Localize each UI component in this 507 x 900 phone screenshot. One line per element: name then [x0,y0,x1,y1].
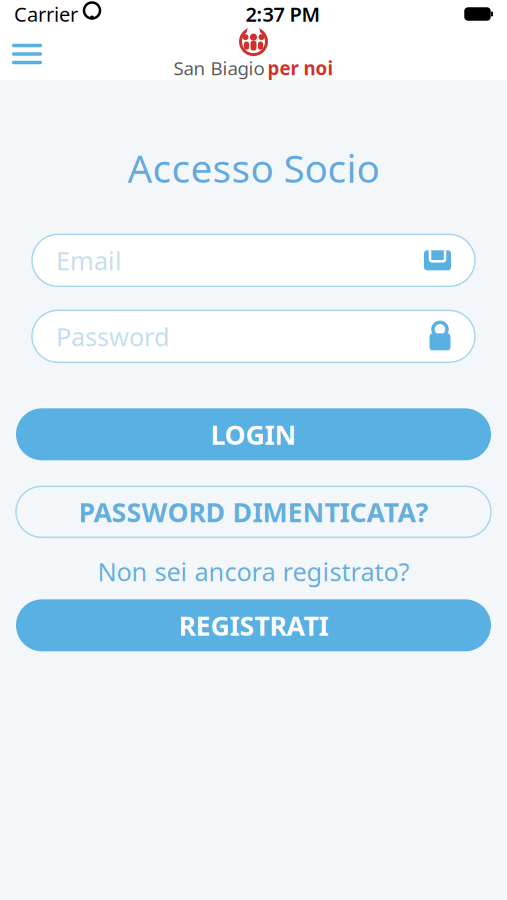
staticText: Email [56,243,122,277]
button[interactable]: Email [32,234,475,286]
staticText: Accesso Socio [127,142,379,193]
staticText: Password [56,319,170,353]
button[interactable]: Menu [0,28,54,80]
staticText: 2:37 PM [245,1,320,27]
staticText: San Biagio [173,56,264,80]
staticText: PASSWORD DIMENTICATA? [78,494,428,529]
staticText: Carrier [14,1,78,27]
button[interactable]: PASSWORD DIMENTICATA? [16,486,491,537]
button[interactable]: LOGIN [16,408,491,460]
button[interactable]: Non sei ancora registrato? [16,551,491,591]
button[interactable]: Password [32,310,475,362]
staticText: LOGIN [210,417,296,452]
staticText: REGISTRATI [178,608,328,643]
staticText: Non sei ancora registrato? [97,554,409,588]
button[interactable]: REGISTRATI [16,599,491,651]
staticText: per noi [267,56,333,80]
